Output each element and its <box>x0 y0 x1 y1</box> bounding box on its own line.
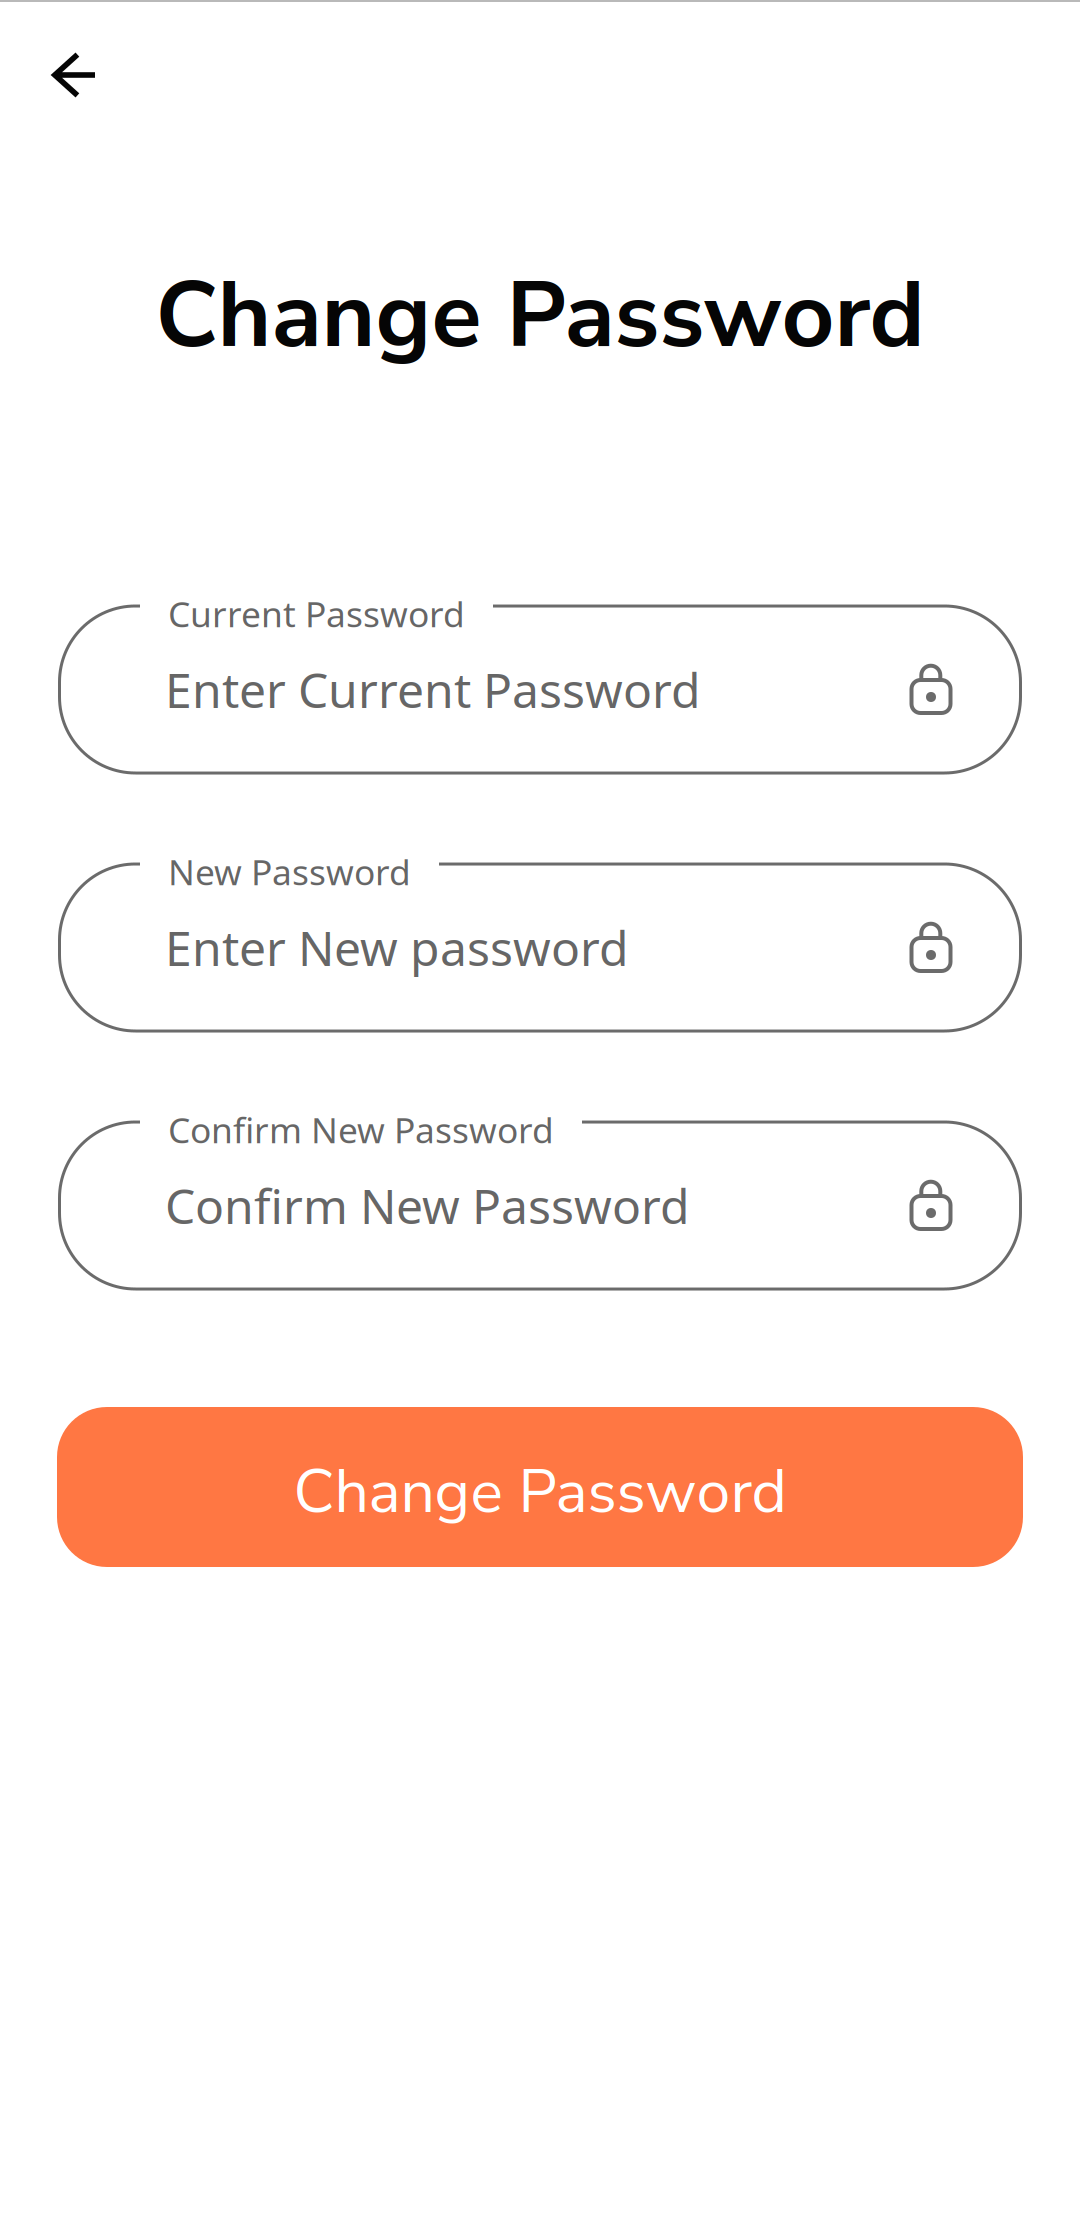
staticText: Current Password <box>168 589 465 638</box>
staticText: Confirm New Password <box>168 1105 554 1154</box>
staticText: Confirm New Password <box>165 1173 690 1238</box>
staticText: Enter Current Password <box>165 657 701 722</box>
button[interactable]: New Password <box>58 862 1022 1032</box>
button[interactable]: Back <box>27 27 123 123</box>
button[interactable]: Change Password <box>57 1407 1023 1567</box>
button[interactable]: Confirm New Password <box>58 1120 1022 1290</box>
staticText: Change Password <box>155 253 924 378</box>
button[interactable]: Current Password <box>58 604 1022 774</box>
staticText: New Password <box>168 847 411 896</box>
staticText: Enter New password <box>165 915 629 980</box>
staticText: Change Password <box>293 1451 786 1533</box>
